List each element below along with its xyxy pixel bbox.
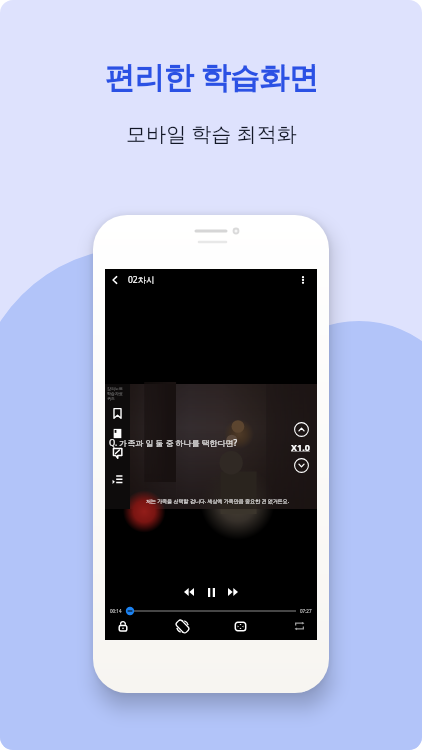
staticText: 강의노트 학습자료 퀴즈 [107,386,123,401]
button[interactable]: Increase speed [292,420,310,438]
button[interactable]: Playlist [105,471,130,487]
button[interactable]: Q and A [105,445,130,461]
button[interactable]: Rotate screen [172,616,192,636]
button[interactable]: Back [108,273,122,287]
staticText: 07:27 [300,608,312,614]
staticText: 저는 가족을 선택할 겁니다. 세상에 가족만큼 중요한 건 없거든요. [146,498,290,505]
staticText: 편리한 학습화면 [105,56,318,97]
button[interactable]: Notes [105,425,130,441]
staticText: 00:14 [110,608,122,614]
staticText: Q. 가족과 일 둘 중 하나를 택한다면? [109,437,238,448]
button[interactable]: Pause [201,582,221,602]
button[interactable]: Bookmark [105,405,130,421]
button[interactable]: Fast forward [223,582,243,602]
button[interactable]: Repeat [289,616,309,636]
button[interactable]: More options [296,273,310,287]
button[interactable]: Lock screen [113,616,133,636]
button[interactable]: Decrease speed [292,456,310,474]
button[interactable]: Fullscreen [230,616,250,636]
staticText: 모바일 학습 최적화 [126,120,297,147]
staticText: X1.0 [291,441,310,453]
staticText: 02차시 [128,274,155,286]
button[interactable]: Rewind [179,582,199,602]
